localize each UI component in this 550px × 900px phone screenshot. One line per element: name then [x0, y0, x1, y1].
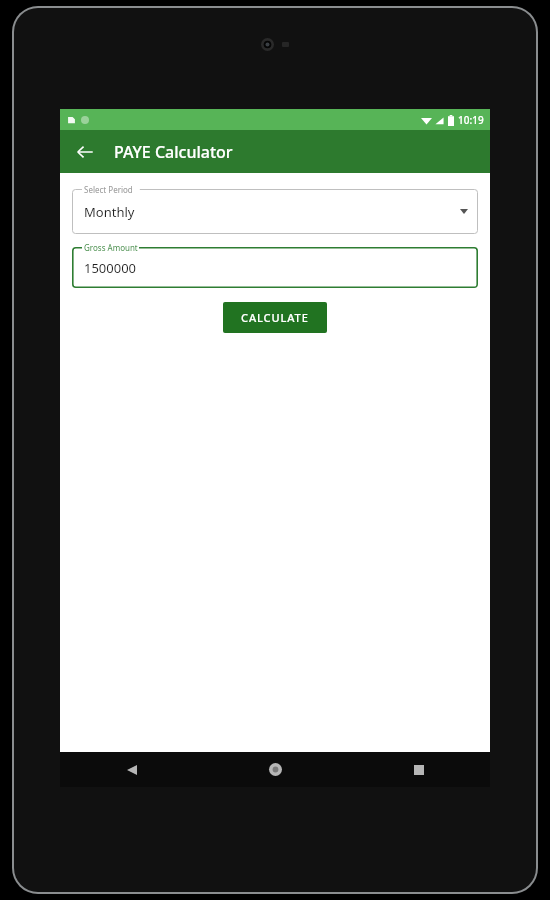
staticText: CALCULATE: [241, 310, 309, 325]
staticText: 10:19: [458, 113, 484, 127]
staticText: Monthly: [84, 203, 135, 221]
staticText: Select Period: [84, 184, 133, 195]
button[interactable]: CALCULATE: [223, 302, 327, 333]
staticText: PAYE Calculator: [114, 141, 233, 163]
button[interactable]: Back: [60, 752, 204, 787]
button[interactable]: Recent apps: [347, 752, 490, 787]
staticText: 1500000: [84, 259, 137, 277]
button[interactable]: Select Period: [72, 189, 478, 234]
button[interactable]: Back: [68, 135, 102, 169]
button[interactable]: Gross Amount: [72, 247, 478, 288]
staticText: Gross Amount: [84, 242, 138, 253]
button[interactable]: Home: [204, 752, 347, 787]
